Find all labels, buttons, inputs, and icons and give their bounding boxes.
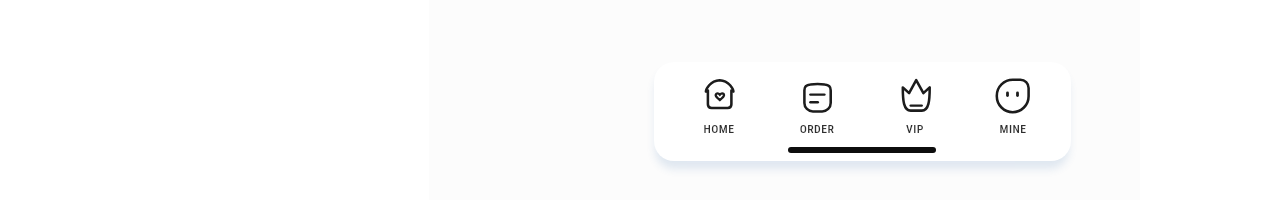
button[interactable]: ORDER <box>768 70 866 142</box>
staticText: MINE <box>964 122 1062 136</box>
staticText: ORDER <box>768 122 866 136</box>
button[interactable]: MINE <box>964 70 1062 142</box>
button[interactable]: HOME <box>670 70 768 142</box>
staticText: VIP <box>866 122 964 136</box>
staticText: HOME <box>670 122 768 136</box>
button[interactable]: VIP <box>866 70 964 142</box>
